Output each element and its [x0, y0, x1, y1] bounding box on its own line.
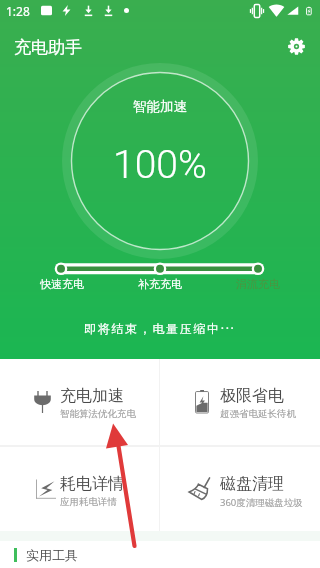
staticText: 充电助手: [14, 37, 82, 58]
staticText: 涓流充电: [236, 277, 280, 291]
staticText: 360度清理磁盘垃圾: [220, 496, 303, 509]
staticText: 快速充电: [40, 277, 84, 291]
staticText: 极限省电: [220, 386, 284, 406]
staticText: 耗电详情: [60, 474, 124, 494]
staticText: 智能算法优化充电: [60, 408, 136, 420]
staticText: 磁盘清理: [220, 474, 284, 494]
staticText: 应用耗电详情: [60, 496, 117, 508]
button[interactable]: 磁盘清理: [160, 447, 320, 531]
staticText: 实用工具: [26, 547, 78, 563]
staticText: 充电加速: [60, 386, 124, 406]
button[interactable]: 充电加速: [0, 359, 159, 445]
staticText: 智能加速: [133, 98, 187, 115]
staticText: 即将结束，电量压缩中···: [84, 320, 236, 336]
staticText: 100%: [113, 142, 207, 188]
staticText: 1:28: [6, 3, 30, 19]
button[interactable]: 耗电详情: [0, 447, 159, 531]
staticText: 补充充电: [138, 277, 182, 291]
button[interactable]: 极限省电: [160, 359, 320, 445]
button[interactable]: Settings: [282, 32, 310, 60]
staticText: 超强省电延长待机: [220, 408, 296, 420]
